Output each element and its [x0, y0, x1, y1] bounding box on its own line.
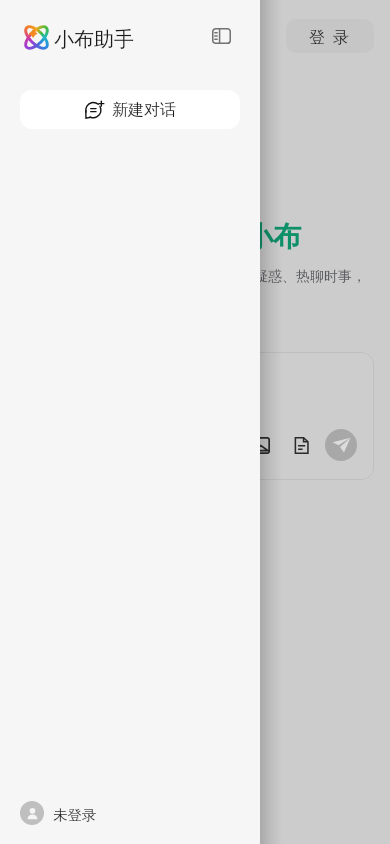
staticText: 我可以帮你解答疑惑、热聊时事， — [156, 268, 366, 286]
button[interactable]: 新建对话 — [20, 90, 240, 129]
button[interactable]: Send — [325, 429, 357, 461]
button[interactable]: Attach document — [285, 429, 317, 461]
staticText: 小布助手 — [54, 27, 134, 52]
button[interactable]: 未登录 — [20, 782, 240, 844]
staticText: 未登录 — [53, 806, 97, 824]
button[interactable]: Toggle sidebar — [204, 21, 238, 55]
button[interactable]: 登录 — [286, 19, 374, 53]
button[interactable]: Attach image — [245, 429, 277, 461]
staticText: 登录 — [305, 28, 353, 48]
staticText: 嗨，我是小布 — [133, 219, 301, 254]
staticText: 新建对话 — [112, 100, 176, 120]
